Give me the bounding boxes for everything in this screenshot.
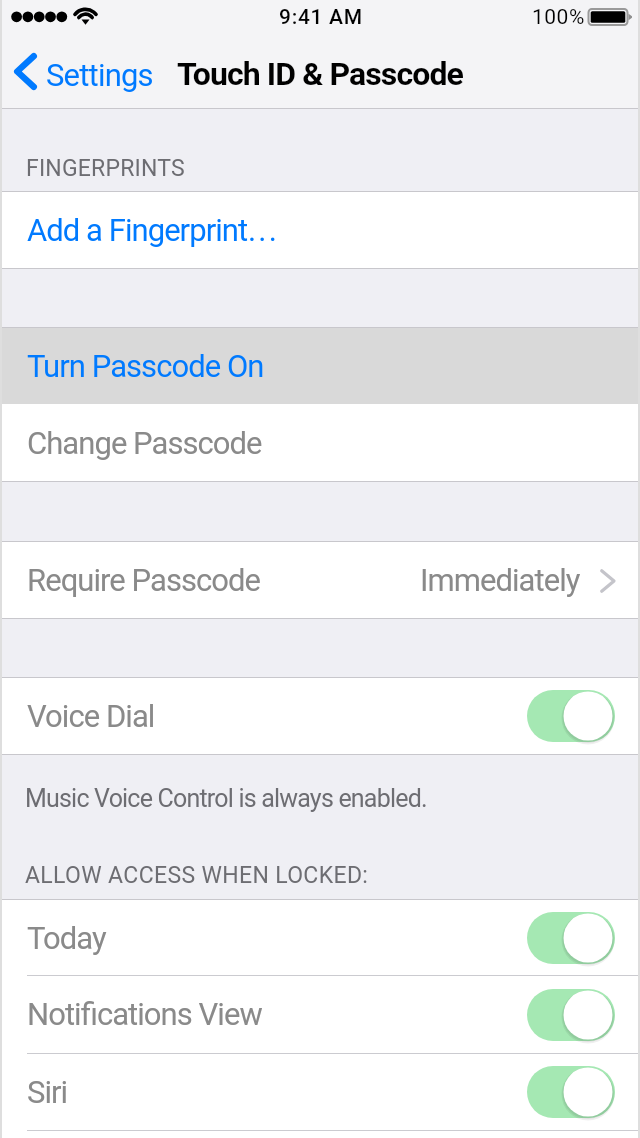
staticText: Turn Passcode On bbox=[27, 348, 264, 384]
staticText: Siri bbox=[27, 1074, 68, 1110]
staticText: Require Passcode bbox=[27, 562, 261, 598]
staticText: ... bbox=[248, 212, 280, 248]
staticText: 9:41 AM bbox=[279, 5, 363, 30]
button[interactable] bbox=[0, 192, 640, 268]
staticText: Add a Fingerprint bbox=[27, 212, 248, 248]
staticText: 100% bbox=[532, 5, 585, 30]
button[interactable]: Toggle switch, on bbox=[523, 1062, 619, 1122]
staticText: Today bbox=[27, 920, 106, 956]
staticText: Touch ID & Passcode bbox=[177, 55, 463, 93]
button[interactable]: Toggle switch, on bbox=[523, 908, 619, 968]
staticText: FINGERPRINTS bbox=[26, 155, 185, 182]
staticText: Voice Dial bbox=[27, 698, 155, 734]
button[interactable]: Toggle switch, on bbox=[523, 686, 619, 746]
staticText: Notifications View bbox=[27, 996, 262, 1032]
staticText: Music Voice Control is always enabled. bbox=[25, 784, 427, 813]
staticText: Change Passcode bbox=[27, 425, 262, 461]
button[interactable] bbox=[0, 328, 640, 404]
staticText: Settings bbox=[46, 57, 153, 93]
button[interactable] bbox=[0, 404, 640, 481]
staticText: ALLOW ACCESS WHEN LOCKED: bbox=[25, 862, 369, 889]
button[interactable]: Back to Settings bbox=[0, 40, 130, 109]
button[interactable]: Toggle switch, on bbox=[523, 985, 619, 1045]
staticText: Immediately bbox=[420, 562, 580, 598]
button[interactable] bbox=[0, 542, 640, 618]
